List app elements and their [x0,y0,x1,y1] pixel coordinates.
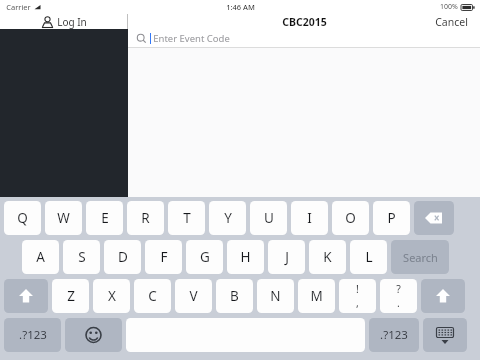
staticText: Search [403,250,438,265]
button[interactable]: Search [391,240,449,274]
staticText: V [189,287,198,305]
staticText: E [101,209,109,227]
button[interactable]: L [350,240,387,274]
staticText: Y [224,209,232,227]
staticText: ! [356,282,359,296]
button[interactable]: Hide keyboard [423,318,467,352]
button[interactable]: C [134,279,171,313]
button[interactable]: R [127,201,164,235]
staticText: CBC2015 [282,15,327,29]
button[interactable]: W [45,201,82,235]
button[interactable]: .?123 [369,318,419,352]
staticText: T [183,209,191,227]
staticText: C [148,287,157,305]
button[interactable]: T [168,201,205,235]
button[interactable]: B [216,279,253,313]
button[interactable]: P [373,201,410,235]
staticText: , [356,296,359,310]
button[interactable]: Z [52,279,89,313]
button[interactable]: U [250,201,287,235]
staticText: .?123 [19,327,47,343]
button[interactable]: ? [380,279,417,313]
staticText: G [200,248,210,266]
staticText: P [387,209,396,227]
button[interactable]: Shift [421,279,465,313]
staticText: I [307,209,312,227]
button[interactable]: I [291,201,328,235]
button[interactable]: .?123 [4,318,61,352]
button[interactable]: ! [339,279,376,313]
staticText: Q [17,209,28,227]
staticText: .?123 [380,327,408,343]
button[interactable]: S [63,240,100,274]
staticText: X [108,287,116,305]
staticText: F [160,248,168,266]
button[interactable]: O [332,201,369,235]
staticText: 1:46 AM [226,2,255,12]
staticText: S [78,248,86,266]
staticText: W [57,209,70,227]
button[interactable]: Y [209,201,246,235]
staticText: D [118,248,128,266]
staticText: R [141,209,150,227]
staticText: Carrier [6,2,31,12]
button[interactable]: N [257,279,294,313]
staticText: H [240,248,251,266]
staticText: Z [67,287,75,305]
staticText: N [270,287,281,305]
staticText: U [264,209,274,227]
staticText: M [310,287,323,305]
staticText: Enter Event Code [153,32,230,45]
staticText: ? [396,282,401,296]
button[interactable]: Cancel [435,15,468,29]
button[interactable]: Q [4,201,41,235]
button[interactable]: Backspace [414,201,454,235]
staticText: Cancel [435,15,468,29]
button[interactable]: X [93,279,130,313]
staticText: 100% [440,2,458,12]
button[interactable]: G [186,240,223,274]
staticText: O [345,209,356,227]
button[interactable]: D [104,240,141,274]
staticText: J [285,248,289,266]
button[interactable]: J [268,240,305,274]
staticText: Log In [57,15,87,29]
staticText: A [36,248,45,266]
button[interactable]: H [227,240,264,274]
button[interactable]: E [86,201,123,235]
button[interactable]: Emoji [65,318,122,352]
staticText: B [230,287,239,305]
button[interactable]: M [298,279,335,313]
staticText: K [323,248,332,266]
button[interactable]: V [175,279,212,313]
button[interactable]: F [145,240,182,274]
staticText: . [397,296,400,310]
staticText: L [365,248,373,266]
button[interactable]: K [309,240,346,274]
button[interactable]: Shift [4,279,48,313]
button[interactable]: Enter Event Code [136,29,480,48]
button[interactable]: A [22,240,59,274]
button[interactable]: Log In [41,15,87,29]
